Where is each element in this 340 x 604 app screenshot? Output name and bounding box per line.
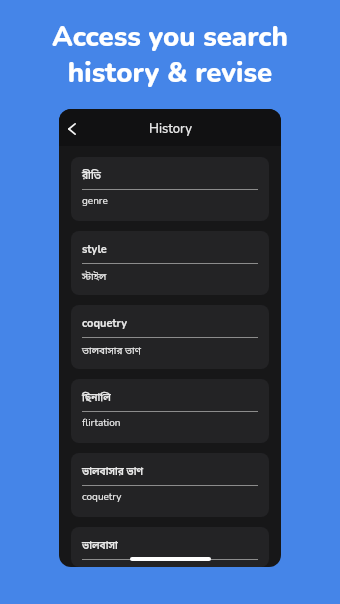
staticText: ছিনালি	[82, 392, 111, 406]
button[interactable]: ভালবাসা	[71, 527, 269, 567]
staticText: flirtation	[82, 416, 121, 430]
button[interactable]: style	[71, 231, 269, 295]
staticText: ভালবাসার ভাণ	[82, 345, 141, 358]
staticText: ভালবাসা	[82, 540, 118, 554]
staticText: History	[149, 120, 192, 138]
staticText: স্টাইল	[82, 271, 107, 284]
staticText: coquetry	[82, 316, 127, 331]
staticText: ভালবাসার ভাণ	[82, 466, 144, 480]
button[interactable]: ভালবাসার ভাণ	[71, 453, 269, 517]
staticText: রীতি	[82, 170, 101, 184]
staticText: genre	[82, 194, 108, 208]
button[interactable]: ছিনালি	[71, 379, 269, 443]
staticText: coquetry	[82, 490, 122, 504]
button[interactable]: coquetry	[71, 305, 269, 369]
staticText: style	[82, 242, 107, 257]
staticText: Access you search history & revise	[0, 18, 340, 92]
button[interactable]: Back	[61, 118, 83, 140]
button[interactable]: রীতি	[71, 157, 269, 221]
